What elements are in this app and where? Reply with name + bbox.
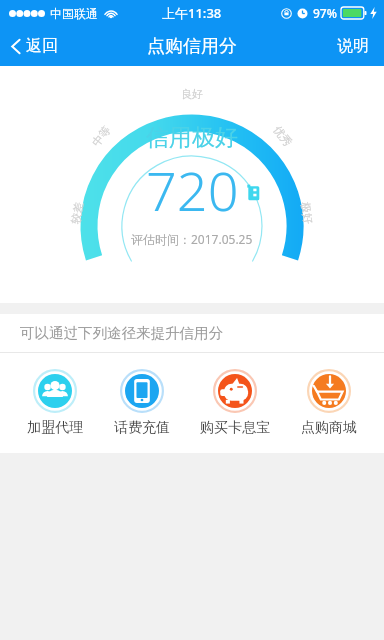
- staticText: 上午11:38: [162, 4, 222, 22]
- staticText: 97%: [313, 5, 337, 21]
- staticText: 话费充值: [114, 419, 170, 437]
- staticText: 点购信用分: [147, 35, 237, 58]
- button[interactable]: 说明: [322, 27, 384, 65]
- staticText: 购买卡息宝: [200, 419, 270, 437]
- button[interactable]: 加盟代理: [24, 366, 86, 440]
- staticText: 优秀: [271, 123, 295, 149]
- staticText: 极好: [298, 201, 316, 225]
- staticText: 中等: [89, 123, 113, 149]
- staticText: 较差: [68, 201, 86, 225]
- staticText: 返回: [26, 36, 58, 56]
- button[interactable]: 点购商城: [298, 366, 360, 440]
- staticText: 点购商城: [301, 419, 357, 437]
- staticText: 720: [146, 153, 239, 227]
- staticText: 评估时间：2017.05.25: [131, 231, 253, 247]
- staticText: 信用极好: [146, 123, 238, 152]
- staticText: 中国联通: [50, 6, 98, 21]
- button[interactable]: 话费充值: [111, 366, 173, 440]
- staticText: 加盟代理: [27, 419, 83, 437]
- button[interactable]: 返回: [0, 29, 74, 63]
- button[interactable]: 购买卡息宝: [197, 366, 273, 440]
- staticText: 说明: [337, 36, 369, 56]
- staticText: 可以通过下列途径来提升信用分: [20, 324, 223, 342]
- staticText: 良好: [181, 87, 203, 101]
